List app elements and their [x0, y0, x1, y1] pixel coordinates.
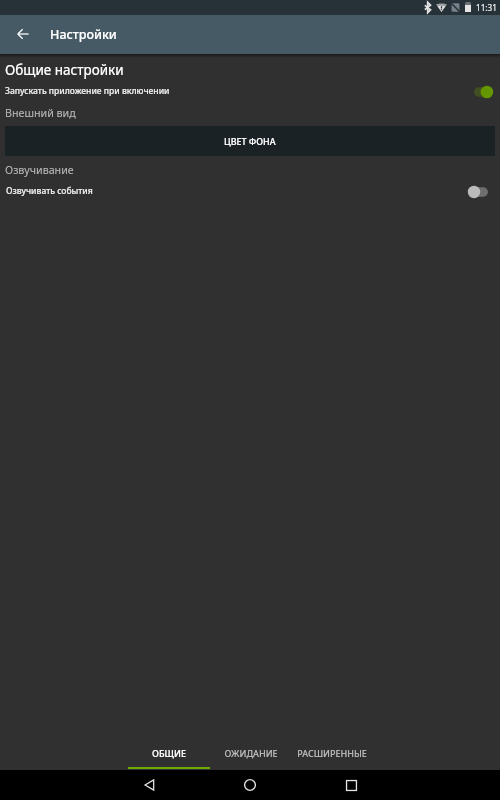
- button[interactable]: ОБЩИЕ: [128, 740, 210, 770]
- staticText: Общие настройки: [5, 61, 124, 79]
- staticText: Настройки: [50, 26, 117, 43]
- button[interactable]: РАСШИРЕННЫЕ: [291, 740, 372, 770]
- staticText: РАСШИРЕННЫЕ: [297, 747, 367, 759]
- staticText: Запускать приложение при включении: [5, 85, 170, 97]
- button[interactable]: Запускать приложение при включении: [0, 81, 500, 102]
- button[interactable]: Home: [229, 770, 271, 800]
- button[interactable]: Back: [4, 15, 42, 53]
- button[interactable]: Озвучивать события: [0, 181, 500, 202]
- button[interactable]: ОЖИДАНИЕ: [210, 740, 291, 770]
- staticText: ЦВЕТ ФОНА: [224, 135, 276, 147]
- staticText: Внешний вид: [5, 106, 76, 121]
- button[interactable]: Recent apps: [330, 770, 372, 800]
- staticText: Озвучивание: [5, 163, 74, 178]
- staticText: ОБЩИЕ: [152, 747, 186, 759]
- staticText: Озвучивать события: [6, 185, 93, 197]
- staticText: ОЖИДАНИЕ: [224, 747, 278, 759]
- staticText: 11:31: [476, 2, 497, 13]
- button[interactable]: ЦВЕТ ФОНА: [5, 126, 495, 156]
- button[interactable]: Back: [128, 770, 170, 800]
